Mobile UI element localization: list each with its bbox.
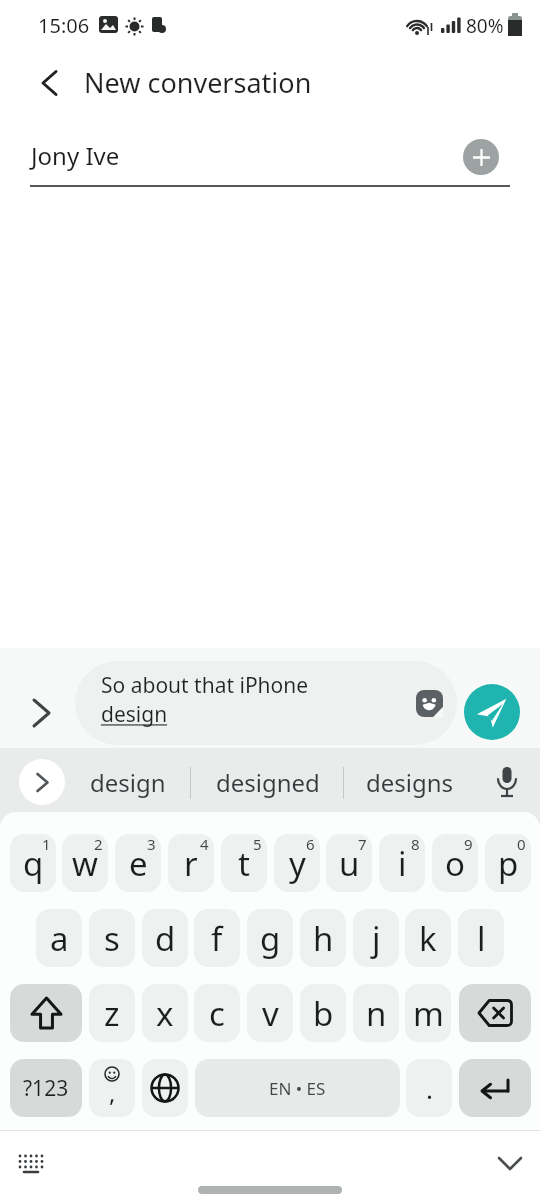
staticText: q xyxy=(23,841,44,886)
staticText: design xyxy=(101,700,168,729)
button[interactable] xyxy=(459,984,531,1042)
button[interactable] xyxy=(459,1059,531,1117)
button[interactable] xyxy=(142,1059,188,1117)
button[interactable]: . xyxy=(406,1059,452,1117)
button[interactable]: a xyxy=(36,909,82,967)
button[interactable]: r xyxy=(168,834,214,892)
staticText: p xyxy=(498,841,519,886)
staticText: i xyxy=(398,841,407,886)
button[interactable]: c xyxy=(194,984,240,1042)
staticText: g xyxy=(260,916,281,961)
staticText: t xyxy=(238,841,250,886)
button[interactable]: j xyxy=(353,909,399,967)
staticText: New conversation xyxy=(84,64,312,101)
button[interactable] xyxy=(490,1146,530,1180)
button[interactable]: So about that iPhone xyxy=(75,661,457,745)
staticText: 1 xyxy=(42,834,51,854)
staticText: EN • ES xyxy=(269,1077,326,1100)
button[interactable]: o xyxy=(432,834,478,892)
button[interactable]: d xyxy=(142,909,188,967)
staticText: m xyxy=(413,991,444,1036)
staticText: k xyxy=(419,916,437,961)
button[interactable]: g xyxy=(247,909,293,967)
button[interactable] xyxy=(10,984,82,1042)
button[interactable] xyxy=(12,1146,50,1180)
staticText: 4 xyxy=(200,834,209,854)
staticText: 3 xyxy=(147,834,156,854)
button[interactable]: , xyxy=(89,1059,135,1117)
button[interactable]: u xyxy=(326,834,372,892)
staticText: 80% xyxy=(466,13,504,39)
staticText: y xyxy=(289,841,306,886)
button[interactable] xyxy=(28,62,70,104)
button[interactable]: i xyxy=(379,834,425,892)
button[interactable]: z xyxy=(89,984,135,1042)
button[interactable]: f xyxy=(194,909,240,967)
button[interactable]: m xyxy=(405,984,451,1042)
staticText: h xyxy=(313,916,334,961)
button[interactable] xyxy=(22,694,60,732)
button[interactable]: k xyxy=(405,909,451,967)
staticText: x xyxy=(156,991,174,1036)
staticText: Jony Ive xyxy=(31,139,120,172)
button[interactable]: l xyxy=(458,909,504,967)
staticText: z xyxy=(104,991,120,1036)
staticText: f xyxy=(211,916,223,961)
staticText: 6 xyxy=(306,834,315,854)
staticText: w xyxy=(72,841,98,886)
button[interactable]: n xyxy=(353,984,399,1042)
staticText: a xyxy=(50,916,69,961)
staticText: 9 xyxy=(464,834,473,854)
button[interactable] xyxy=(19,759,65,805)
button[interactable]: design xyxy=(70,756,185,808)
staticText: e xyxy=(129,841,148,886)
button[interactable]: x xyxy=(142,984,188,1042)
staticText: . xyxy=(426,1071,433,1106)
staticText: n xyxy=(366,991,387,1036)
staticText: design xyxy=(90,766,166,799)
button[interactable]: s xyxy=(89,909,135,967)
staticText: , xyxy=(109,1076,116,1109)
button[interactable] xyxy=(463,139,499,175)
button[interactable]: EN • ES xyxy=(195,1059,400,1117)
staticText: c xyxy=(209,991,225,1036)
button[interactable] xyxy=(464,684,520,740)
staticText: So about that iPhone xyxy=(101,671,309,700)
staticText: 15:06 xyxy=(38,12,90,39)
button[interactable]: y xyxy=(274,834,320,892)
staticText: 0 xyxy=(517,834,526,854)
staticText: 8 xyxy=(411,834,420,854)
staticText: s xyxy=(104,916,120,961)
staticText: l xyxy=(477,916,486,961)
button[interactable]: t xyxy=(221,834,267,892)
staticText: r xyxy=(184,841,198,886)
staticText: b xyxy=(313,991,334,1036)
staticText: v xyxy=(262,991,279,1036)
button[interactable]: designs xyxy=(350,756,470,808)
staticText: designs xyxy=(366,766,454,799)
staticText: d xyxy=(155,916,176,961)
button[interactable]: v xyxy=(247,984,293,1042)
button[interactable]: h xyxy=(300,909,346,967)
button[interactable]: ?123 xyxy=(10,1059,82,1117)
staticText: 5 xyxy=(253,834,262,854)
staticText: j xyxy=(372,916,381,961)
staticText: ?123 xyxy=(23,1074,69,1103)
staticText: designed xyxy=(216,766,320,799)
staticText: 7 xyxy=(358,834,367,854)
button[interactable]: q xyxy=(10,834,56,892)
button[interactable]: w xyxy=(62,834,108,892)
button[interactable]: designed xyxy=(200,756,335,808)
button[interactable]: p xyxy=(485,834,531,892)
staticText: 2 xyxy=(94,834,103,854)
button[interactable]: b xyxy=(300,984,346,1042)
button[interactable]: e xyxy=(115,834,161,892)
staticText: o xyxy=(445,841,465,886)
staticText: u xyxy=(339,841,360,886)
